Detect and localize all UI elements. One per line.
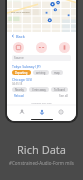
button[interactable]: Record [37, 107, 47, 117]
button[interactable]: Source [12, 55, 71, 61]
button[interactable]: Reload [14, 94, 24, 98]
button[interactable]: To Board [51, 87, 68, 92]
button[interactable]: Chicago (US) [7, 76, 76, 93]
staticText: Tokyo Subway (JP) [12, 64, 41, 69]
staticText: Departing [15, 71, 28, 75]
staticText: Chicago (US) [12, 77, 33, 82]
staticText: Nearby [15, 88, 24, 92]
button[interactable]: Rewind [36, 42, 47, 53]
staticText: Rich Data [17, 142, 66, 157]
staticText: Rue de la Rivière [11, 10, 30, 13]
staticText: Back [16, 34, 25, 39]
staticText: Updated just now [7, 101, 76, 104]
button[interactable]: map [51, 70, 63, 75]
button[interactable]: See all [59, 94, 69, 98]
button[interactable]: Profile [17, 107, 27, 117]
button[interactable]: Back [7, 32, 76, 40]
button[interactable]: Settings [56, 107, 66, 117]
staticText: 04:55:18 [12, 82, 23, 86]
staticText: arriving [36, 71, 46, 75]
staticText: map [54, 71, 60, 75]
button[interactable]: Record [59, 42, 70, 53]
staticText: Source [14, 56, 24, 60]
button[interactable]: Nearby [12, 87, 27, 92]
button[interactable]: Tokyo Subway (JP) [7, 63, 76, 76]
staticText: 3 min away [32, 88, 46, 92]
button[interactable]: Stop [13, 42, 24, 53]
button[interactable]: arriving [33, 70, 49, 75]
staticText: #Constrained-Audio-Form mils [9, 160, 74, 166]
staticText: To Board [54, 88, 65, 92]
button[interactable]: Departing [12, 70, 31, 75]
button[interactable]: 3 min away [29, 87, 49, 92]
